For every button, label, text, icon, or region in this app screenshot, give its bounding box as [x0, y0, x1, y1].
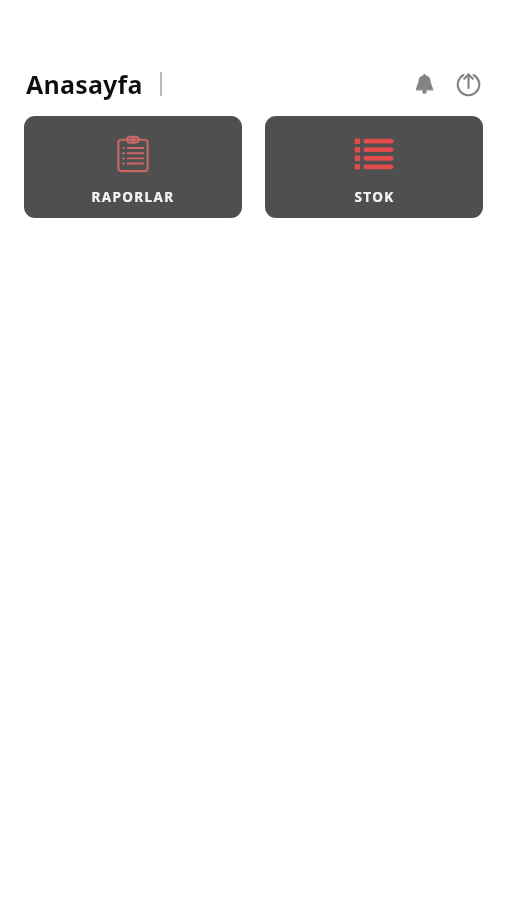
button[interactable]: STOK — [265, 116, 483, 218]
button[interactable]: Notifications — [405, 65, 443, 103]
button[interactable]: Upload — [449, 65, 487, 103]
button[interactable]: RAPORLAR — [24, 116, 242, 218]
staticText: RAPORLAR — [91, 188, 175, 206]
staticText: Anasayfa — [26, 67, 143, 101]
staticText: STOK — [354, 188, 395, 206]
